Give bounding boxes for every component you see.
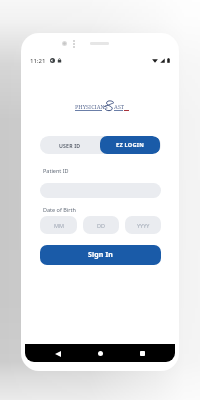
staticText: PHYSICIANS [75, 103, 108, 110]
staticText: YYYY [137, 222, 150, 229]
staticText: EZ LOGIN [116, 141, 145, 149]
button[interactable]: MM [40, 216, 77, 234]
staticText: 11:21 [30, 57, 46, 65]
staticText: Patient ID [43, 167, 69, 174]
button[interactable]: YYYY [125, 216, 161, 234]
button[interactable]: Back [51, 345, 65, 362]
staticText: DD [97, 222, 106, 229]
button[interactable]: Home [93, 345, 107, 362]
button[interactable]: EZ LOGIN [100, 136, 160, 154]
staticText: Sign In [88, 250, 114, 260]
staticText: USER ID [59, 142, 81, 149]
button[interactable]: Recent apps [135, 345, 149, 362]
button[interactable]: Sign In [40, 245, 161, 265]
staticText: Date of Birth [43, 206, 76, 213]
staticText: AST [114, 103, 125, 110]
staticText: MM [54, 222, 64, 229]
button[interactable]: DD [83, 216, 119, 234]
button[interactable]: USER ID [40, 136, 100, 154]
button[interactable]: Patient ID field [40, 183, 161, 198]
